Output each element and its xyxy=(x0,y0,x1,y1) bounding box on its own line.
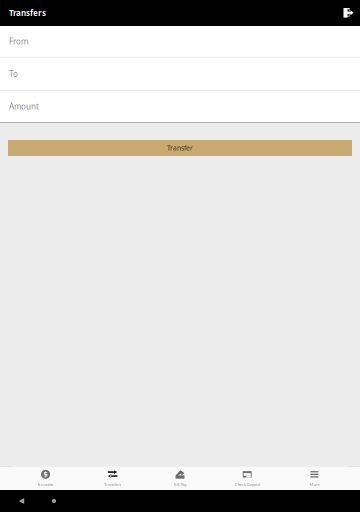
button[interactable]: Amount xyxy=(0,91,360,122)
button[interactable]: Log out xyxy=(338,0,360,26)
staticText: Amount xyxy=(9,101,39,112)
staticText: More xyxy=(309,482,319,487)
staticText: Transfers xyxy=(9,8,46,18)
button[interactable]: Check Deposit xyxy=(214,466,281,490)
button[interactable]: Bill Pay xyxy=(146,466,214,490)
staticText: Transfer xyxy=(167,144,193,152)
staticText: Bill Pay xyxy=(173,482,186,487)
button[interactable]: More xyxy=(281,466,348,490)
button[interactable]: Back xyxy=(7,490,36,512)
staticText: From xyxy=(9,36,28,47)
staticText: Check Deposit xyxy=(235,482,260,487)
button[interactable]: Accounts xyxy=(12,466,79,490)
staticText: Transfers xyxy=(104,482,121,487)
staticText: To xyxy=(9,69,18,79)
button[interactable]: Home xyxy=(36,490,72,512)
button[interactable]: To xyxy=(0,58,360,90)
staticText: Accounts xyxy=(38,482,54,487)
button[interactable]: Transfers xyxy=(79,466,146,490)
button[interactable]: From xyxy=(0,26,360,57)
button[interactable]: Transfer xyxy=(8,140,352,156)
